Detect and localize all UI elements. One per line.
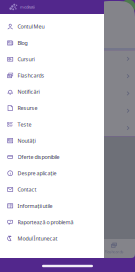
staticText: Blog xyxy=(18,39,28,46)
button[interactable]: Contact xyxy=(0,181,104,198)
button[interactable]: Modul Întunecat xyxy=(0,230,104,247)
staticText: Teste xyxy=(18,121,32,128)
button[interactable]: Flashcards xyxy=(0,67,104,84)
staticText: Cursuri xyxy=(18,56,35,63)
button[interactable]: Notificări xyxy=(0,84,104,100)
staticText: Resurse xyxy=(18,104,38,112)
button[interactable]: Cursuri xyxy=(0,51,104,67)
button[interactable]: Despre aplicație xyxy=(0,165,104,181)
button[interactable]: Blog xyxy=(0,35,104,51)
button[interactable]: Contul Meu xyxy=(0,18,104,35)
staticText: Despre aplicație xyxy=(18,170,57,177)
staticText: Flashcards xyxy=(18,72,45,79)
staticText: Notificări xyxy=(18,88,40,95)
staticText: Informații utile xyxy=(18,202,53,209)
staticText: meditatii xyxy=(20,4,35,10)
button[interactable]: Informații utile xyxy=(0,198,104,214)
button[interactable]: Raportează o problemă xyxy=(0,214,104,230)
staticText: Oferte disponibile xyxy=(18,153,60,160)
staticText: Raportează o problemă xyxy=(18,219,74,226)
button[interactable]: Teste xyxy=(0,116,104,132)
staticText: Contul Meu xyxy=(18,23,45,30)
staticText: Contact xyxy=(18,186,37,193)
button[interactable]: Noutăți xyxy=(0,132,104,149)
staticText: Noutăți xyxy=(18,137,36,144)
staticText: Modul Întunecat xyxy=(18,235,58,242)
staticText: Flashcards xyxy=(104,249,123,254)
button[interactable]: Resurse xyxy=(0,100,104,116)
button[interactable]: Oferte disponibile xyxy=(0,149,104,165)
